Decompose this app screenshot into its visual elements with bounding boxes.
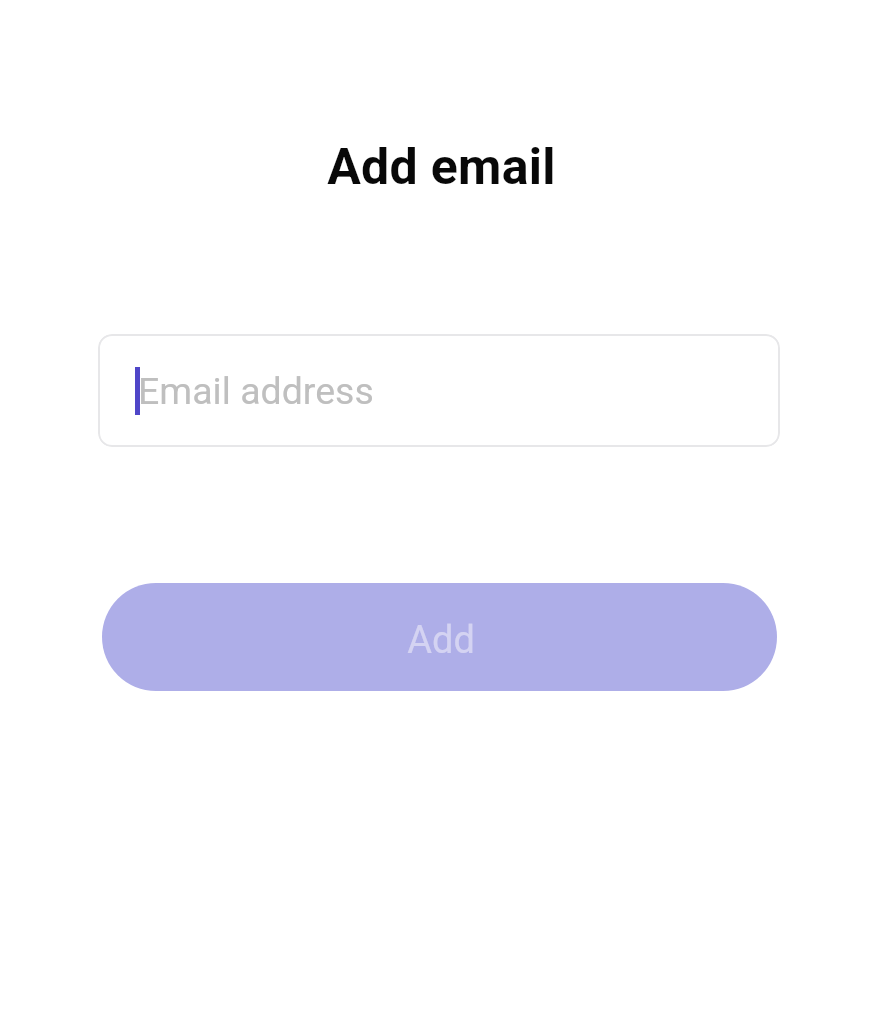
staticText: Add <box>407 618 475 663</box>
staticText: Email address <box>138 369 374 413</box>
button[interactable]: Add <box>102 583 777 691</box>
button[interactable]: Email address input field <box>98 334 780 447</box>
staticText: Add email <box>327 138 556 197</box>
